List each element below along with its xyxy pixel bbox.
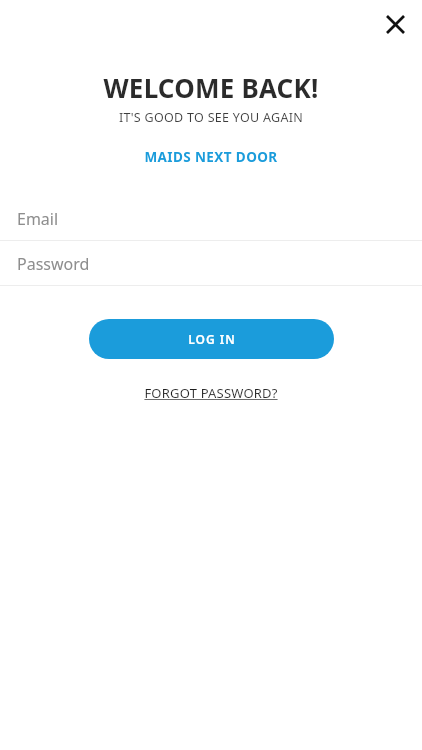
staticText: LOG IN: [188, 331, 236, 347]
button[interactable]: FORGOT PASSWORD?: [138, 382, 284, 404]
button[interactable]: LOG IN: [89, 319, 334, 359]
staticText: MAIDS NEXT DOOR: [144, 148, 278, 166]
staticText: IT'S GOOD TO SEE YOU AGAIN: [0, 109, 422, 126]
button[interactable]: MAIDS NEXT DOOR: [0, 148, 422, 166]
button[interactable]: Close: [375, 4, 415, 44]
staticText: Password: [17, 253, 90, 275]
staticText: Email: [17, 208, 59, 230]
button[interactable]: Password: [0, 241, 422, 286]
staticText: FORGOT PASSWORD?: [144, 384, 278, 402]
button[interactable]: Email: [0, 196, 422, 241]
staticText: WELCOME BACK!: [0, 70, 422, 105]
